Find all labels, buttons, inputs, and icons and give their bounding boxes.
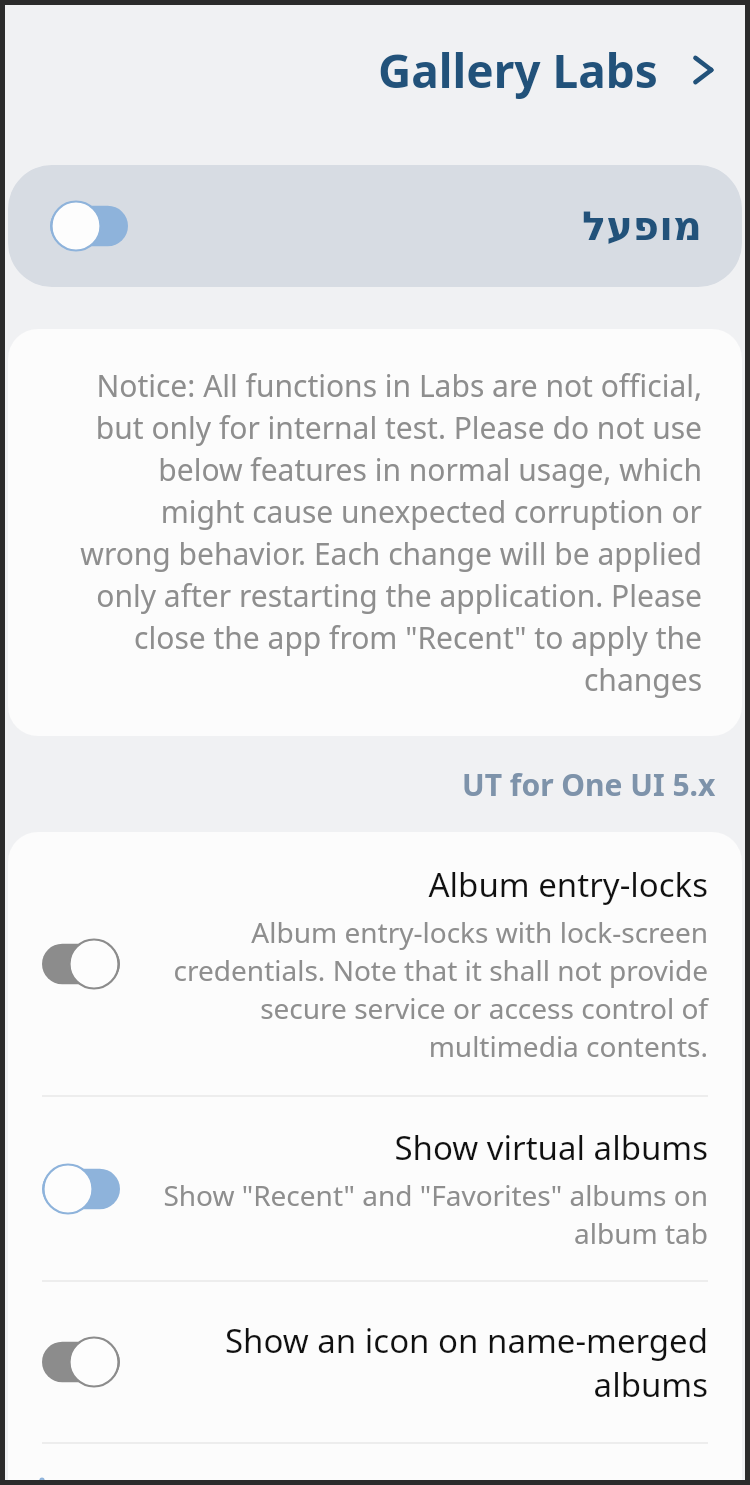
button[interactable]: Show shared albums on album tab: [8, 1444, 742, 1485]
staticText: UT for One UI 5.x: [462, 764, 716, 805]
button[interactable]: Show virtual albums: [42, 1163, 120, 1215]
button[interactable]: Show an icon on name-merged albums: [42, 1336, 120, 1388]
button[interactable]: Album entry-locks: [8, 832, 742, 1095]
staticText: Show an icon on name-merged albums: [146, 1318, 708, 1406]
staticText: Album entry-locks with lock-screen crede…: [146, 913, 708, 1065]
staticText: Show virtual albums: [146, 1125, 708, 1170]
staticText: Notice: All functions in Labs are not of…: [70, 365, 702, 700]
staticText: מופעל: [582, 203, 702, 250]
button[interactable]: Show an icon on name-merged albums: [8, 1282, 742, 1442]
button[interactable]: מופעל: [50, 200, 128, 252]
button[interactable]: מופעל: [8, 165, 742, 287]
staticText: Album entry-locks: [146, 862, 708, 907]
button[interactable]: Show virtual albums: [8, 1097, 742, 1280]
staticText: Show "Recent" and "Favorites" albums on …: [146, 1176, 708, 1252]
button[interactable]: Gallery Labs: [0, 0, 750, 140]
other: Open Gallery Labs: [684, 51, 722, 89]
staticText: Gallery Labs: [378, 39, 658, 102]
button[interactable]: Album entry-locks: [42, 938, 120, 990]
